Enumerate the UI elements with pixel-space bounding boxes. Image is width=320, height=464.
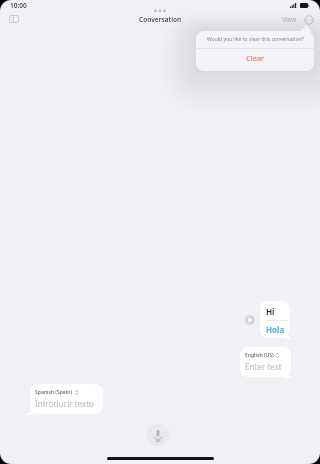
staticText: English (US) bbox=[245, 352, 274, 359]
button[interactable]: More options bbox=[303, 14, 315, 26]
staticText: 10:00 bbox=[10, 1, 27, 10]
staticText: Hola bbox=[266, 324, 285, 335]
button[interactable]: Clear bbox=[196, 49, 314, 71]
button[interactable]: Show sidebar bbox=[5, 10, 23, 28]
staticText: Enter text bbox=[245, 361, 282, 372]
button[interactable]: English (US) bbox=[240, 347, 291, 377]
staticText: Clear bbox=[246, 53, 265, 63]
button[interactable]: Play translation bbox=[241, 311, 259, 329]
staticText: View bbox=[282, 15, 297, 24]
staticText: Introducir texto bbox=[35, 398, 94, 409]
staticText: Conversation bbox=[139, 15, 182, 24]
button[interactable]: Microphone bbox=[147, 424, 169, 446]
staticText: Spanish (Spain) bbox=[35, 389, 73, 396]
button[interactable]: Spanish (Spain) bbox=[30, 384, 103, 414]
button[interactable]: View bbox=[279, 11, 300, 28]
staticText: Hi bbox=[266, 306, 275, 317]
staticText: Would you like to clear this conversatio… bbox=[207, 36, 304, 43]
